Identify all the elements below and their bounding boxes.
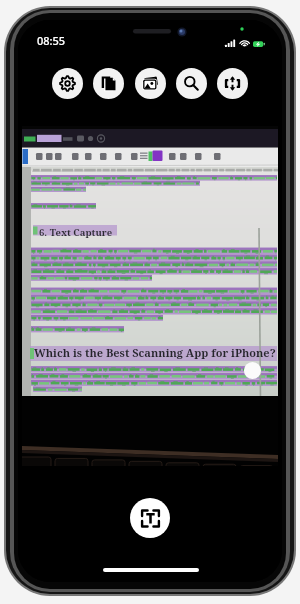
staticText: 08:55	[37, 33, 66, 48]
button[interactable]: Capture text	[130, 498, 170, 538]
button[interactable]: Settings	[52, 68, 83, 99]
staticText: 6. Text Capture	[39, 226, 113, 239]
button[interactable]: Search	[176, 68, 207, 99]
button[interactable]: Resize	[217, 68, 248, 99]
button[interactable]: Gallery	[135, 68, 166, 99]
staticText: Which is the Best Scanning App for iPhon…	[34, 345, 276, 360]
button[interactable]: Documents	[93, 68, 124, 99]
